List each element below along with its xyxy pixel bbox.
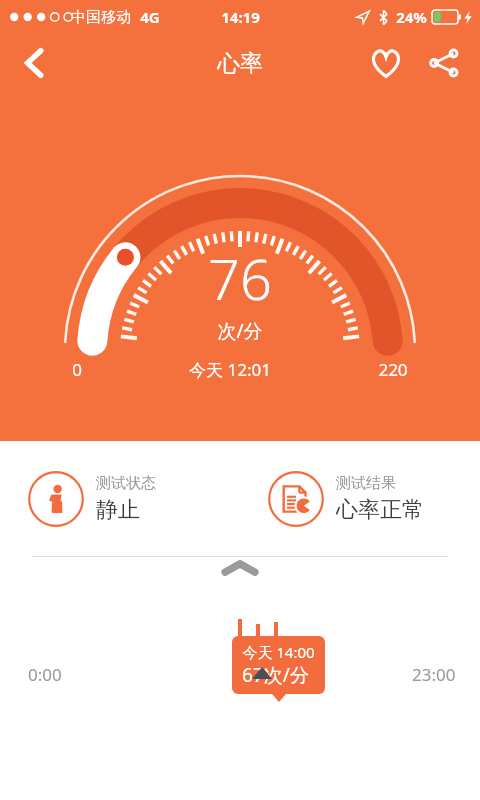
staticText: 4G <box>140 7 160 27</box>
staticText: 220 <box>378 358 408 381</box>
button[interactable]: 测试状态 <box>28 471 240 527</box>
staticText: 24% <box>396 7 427 27</box>
staticText: 23:00 <box>412 663 456 686</box>
button[interactable]: Collapse <box>223 562 257 574</box>
button[interactable]: 测试结果 <box>268 471 480 527</box>
staticText: 测试状态 <box>96 474 156 493</box>
button[interactable]: Favorite <box>364 41 408 85</box>
staticText: 次/分 <box>217 318 263 344</box>
staticText: 76 <box>208 240 272 316</box>
staticText: 今天 14:00 <box>242 642 315 662</box>
staticText: 中国移动 <box>71 8 131 27</box>
staticText: 今天 12:01 <box>189 358 271 381</box>
staticText: 心率 <box>217 49 263 78</box>
staticText: 67次/分 <box>242 662 309 688</box>
staticText: 14:19 <box>221 7 260 27</box>
staticText: 0:00 <box>28 663 62 686</box>
button[interactable]: Share <box>422 41 466 85</box>
staticText: 心率正常 <box>336 496 424 524</box>
staticText: 静止 <box>96 496 140 524</box>
staticText: 测试结果 <box>336 474 396 493</box>
staticText: 0 <box>72 358 82 381</box>
button[interactable]: Back <box>8 37 60 89</box>
